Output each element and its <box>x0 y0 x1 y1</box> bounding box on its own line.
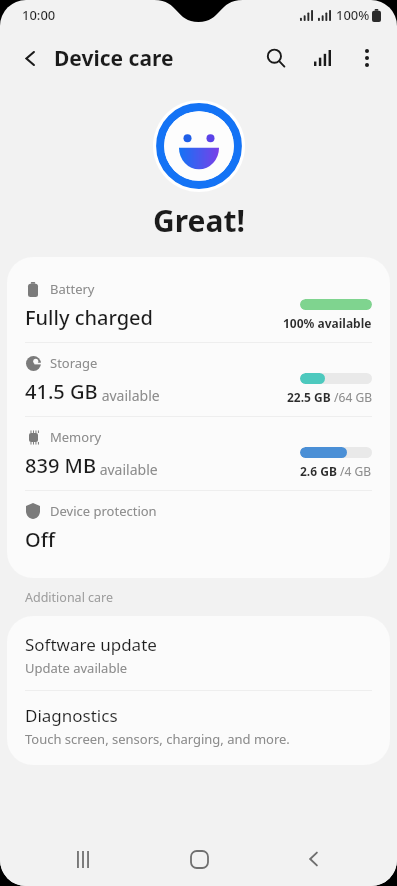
button[interactable]: Device protection <box>7 491 390 564</box>
staticText: 22.5 GB <box>287 389 331 405</box>
staticText: Off <box>25 526 55 553</box>
staticText: 839 MB <box>25 452 96 479</box>
button[interactable]: Usage statistics <box>299 35 345 81</box>
staticText: 100% available <box>283 315 372 331</box>
staticText: 41.5 GB <box>25 378 98 405</box>
staticText: 100% <box>336 6 370 24</box>
staticText: available <box>98 386 160 405</box>
staticText: available <box>96 460 158 479</box>
staticText: Update available <box>25 659 128 677</box>
staticText: Battery <box>50 280 95 298</box>
button[interactable]: Back <box>8 36 52 80</box>
staticText: Software update <box>25 633 157 656</box>
staticText: /64 GB <box>331 389 372 405</box>
button[interactable]: Storage <box>7 343 390 416</box>
staticText: Additional care <box>25 589 114 606</box>
staticText: Device protection <box>50 502 157 520</box>
staticText: 10:00 <box>22 6 56 24</box>
staticText: 2.6 GB <box>300 463 337 479</box>
button[interactable]: Memory <box>7 417 390 490</box>
button[interactable]: Back <box>282 835 346 883</box>
staticText: Diagnostics <box>25 704 118 727</box>
staticText: Touch screen, sensors, charging, and mor… <box>25 730 290 748</box>
button[interactable]: Home <box>167 835 231 883</box>
staticText: Memory <box>50 428 102 446</box>
staticText: Device care <box>54 44 174 73</box>
button[interactable]: Search <box>253 35 299 81</box>
button[interactable]: Software update <box>7 620 390 690</box>
button[interactable]: More options <box>345 36 389 80</box>
staticText: /4 GB <box>337 463 372 479</box>
button[interactable]: Diagnostics <box>7 691 390 761</box>
button[interactable]: Battery <box>7 269 390 342</box>
button[interactable]: Recents <box>51 835 115 883</box>
staticText: Fully charged <box>25 304 153 331</box>
staticText: Great! <box>153 200 245 241</box>
staticText: Storage <box>50 354 98 372</box>
